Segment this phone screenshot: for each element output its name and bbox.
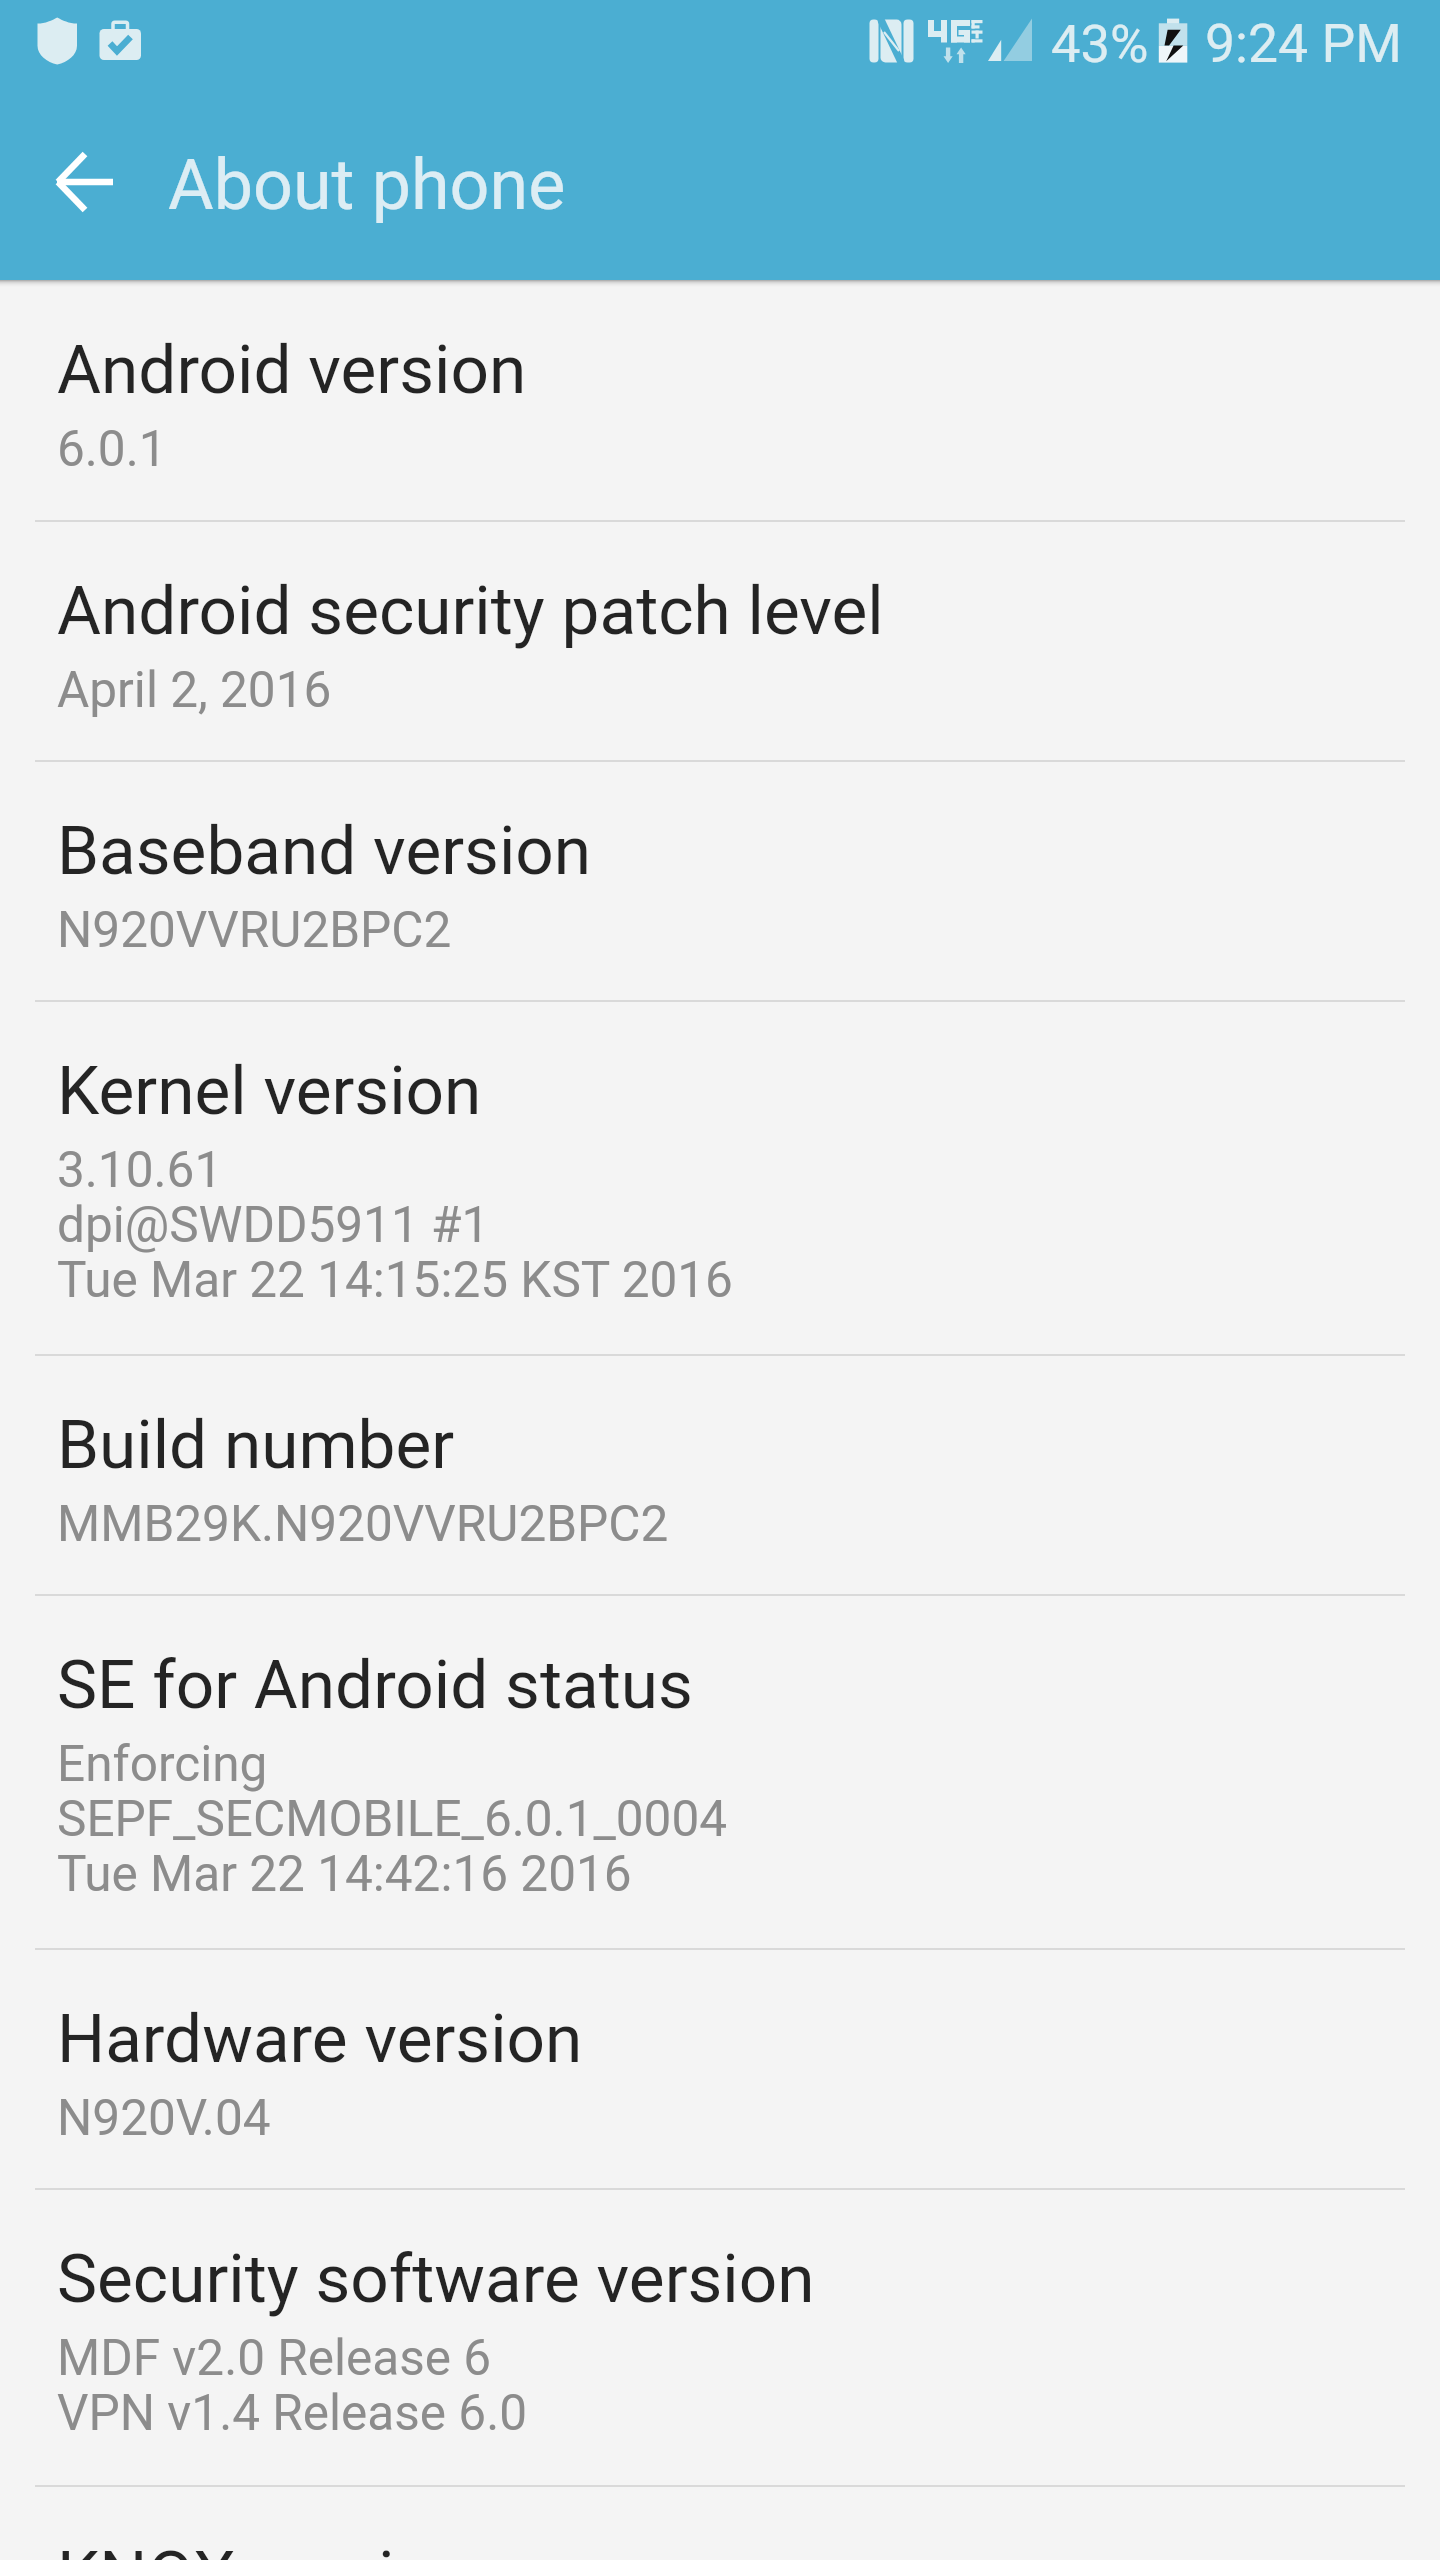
staticText: SE for Android status xyxy=(57,1645,693,1724)
staticText: April 2, 2016 xyxy=(57,661,332,719)
button[interactable]: Security software version xyxy=(0,2189,1440,2486)
staticText: Build number xyxy=(57,1405,455,1484)
staticText: Baseband version xyxy=(57,811,592,890)
staticText: N920V.04 xyxy=(57,2089,271,2147)
button[interactable]: Android version xyxy=(0,280,1440,521)
staticText: MDF v2.0 Release 6 VPN v1.4 Release 6.0 xyxy=(57,2329,528,2442)
button[interactable]: Hardware version xyxy=(0,1949,1440,2189)
button[interactable]: Navigate up xyxy=(20,112,150,252)
staticText: Android security patch level xyxy=(57,571,884,650)
staticText: N920VVRU2BPC2 xyxy=(57,901,452,959)
button[interactable]: Baseband version xyxy=(0,761,1440,1001)
staticText: About phone xyxy=(168,144,566,226)
button[interactable]: Build number xyxy=(0,1355,1440,1595)
staticText: 9:24 PM xyxy=(1205,12,1402,75)
button[interactable]: Android security patch level xyxy=(0,521,1440,761)
staticText: KNOX version xyxy=(57,2536,471,2560)
staticText: Security software version xyxy=(57,2239,815,2318)
staticText: 43% xyxy=(1051,13,1149,75)
staticText: Kernel version xyxy=(57,1051,482,1130)
staticText: Android version xyxy=(57,330,527,409)
staticText: 3.10.61 dpi@SWDD5911 #1 Tue Mar 22 14:15… xyxy=(57,1141,733,1309)
button[interactable]: KNOX version xyxy=(0,2486,1440,2560)
staticText: Hardware version xyxy=(57,1999,583,2078)
staticText: MMB29K.N920VVRU2BPC2 xyxy=(57,1495,669,1553)
button[interactable]: Kernel version xyxy=(0,1001,1440,1355)
button[interactable]: SE for Android status xyxy=(0,1595,1440,1949)
staticText: 6.0.1 xyxy=(57,420,167,478)
staticText: Enforcing SEPF_SECMOBILE_6.0.1_0004 Tue … xyxy=(57,1735,728,1903)
